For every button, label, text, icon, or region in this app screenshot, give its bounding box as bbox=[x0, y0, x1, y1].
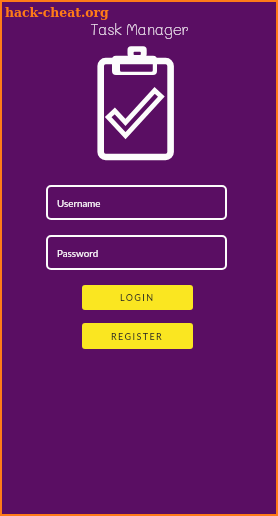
staticText: LOGIN bbox=[120, 292, 155, 303]
button[interactable]: LOGIN bbox=[82, 285, 193, 310]
staticText: Password bbox=[57, 247, 99, 259]
button[interactable]: Username bbox=[46, 185, 227, 220]
staticText: hack-cheat.org bbox=[5, 5, 109, 20]
button[interactable]: REGISTER bbox=[82, 323, 193, 349]
staticText: REGISTER bbox=[111, 331, 164, 342]
staticText: Task Manager bbox=[90, 19, 189, 38]
staticText: Username bbox=[57, 197, 101, 209]
button[interactable]: Password bbox=[46, 235, 227, 270]
